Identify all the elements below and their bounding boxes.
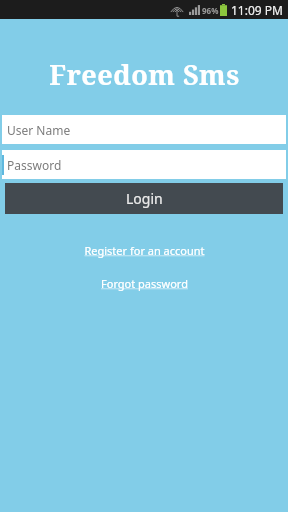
staticText: Login — [126, 189, 163, 208]
staticText: 11:09 PM — [231, 2, 283, 18]
button[interactable]: Forgot password — [101, 276, 188, 291]
button[interactable]: Password — [2, 150, 286, 179]
button[interactable]: Register for an account — [84, 243, 205, 258]
staticText: Register for an account — [84, 243, 205, 258]
staticText: Password — [7, 157, 62, 173]
staticText: User Name — [7, 122, 71, 138]
staticText: 96% — [202, 5, 219, 16]
button[interactable]: Login — [5, 183, 283, 214]
staticText: Forgot password — [101, 276, 188, 291]
staticText: Freedom Sms — [49, 56, 240, 93]
button[interactable]: User Name — [2, 115, 286, 144]
